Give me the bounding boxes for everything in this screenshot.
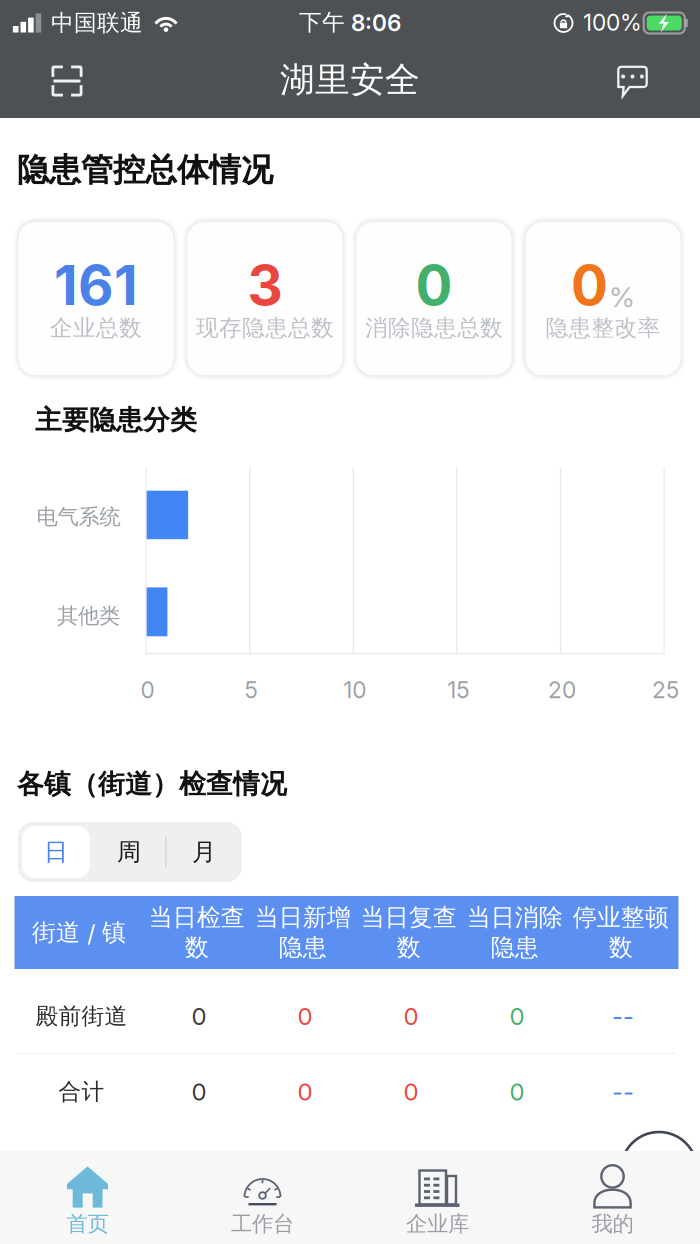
staticText: 0 — [403, 1002, 418, 1031]
staticText: 各镇（街道）检查情况 — [17, 767, 287, 801]
button[interactable]: 我的 — [525, 1151, 700, 1244]
staticText: 0 — [571, 252, 608, 318]
button[interactable]: 0 — [356, 222, 511, 375]
button[interactable]: 扫一扫 — [27, 44, 107, 118]
staticText: 0 — [415, 252, 452, 318]
staticText: 下午 8:06 — [299, 8, 401, 37]
staticText: 主要隐患分类 — [35, 403, 197, 437]
staticText: 0 — [509, 1002, 524, 1031]
staticText: 殿前街道 — [35, 1002, 127, 1031]
staticText: 街道 / 镇 — [32, 917, 126, 948]
staticText: 当日新增 隐患 — [254, 902, 350, 963]
button[interactable]: 首页 — [0, 1151, 175, 1244]
staticText: 工作台 — [231, 1210, 294, 1237]
staticText: 电气系统 — [36, 504, 120, 530]
staticText: 首页 — [66, 1210, 108, 1237]
staticText: 5 — [245, 676, 258, 704]
staticText: 3 — [247, 252, 282, 318]
staticText: 0 — [297, 1077, 312, 1106]
button[interactable]: 月 — [170, 826, 238, 878]
staticText: 隐患管控总体情况 — [17, 150, 273, 190]
button[interactable]: 0 — [525, 222, 680, 375]
staticText: 25 — [652, 676, 679, 704]
staticText: 其他类 — [57, 603, 120, 629]
button[interactable]: 日 — [22, 826, 90, 878]
button[interactable]: 工作台 — [175, 1151, 350, 1244]
button[interactable]: 3 — [187, 222, 342, 375]
staticText: 隐患整改率 — [545, 314, 660, 342]
staticText: 0 — [140, 676, 154, 704]
staticText: 企业总数 — [50, 314, 142, 342]
staticText: 日 — [44, 837, 68, 867]
staticText: 15 — [447, 676, 469, 704]
staticText: 当日检查 数 — [148, 902, 244, 963]
staticText: 当日消除 隐患 — [466, 902, 562, 963]
staticText: 161 — [54, 252, 138, 318]
staticText: 当日复查 数 — [360, 902, 456, 963]
staticText: 0 — [297, 1002, 312, 1031]
staticText: 月 — [192, 837, 216, 867]
staticText: 0 — [403, 1077, 418, 1106]
button[interactable]: 殿前街道 — [17, 986, 676, 1046]
button[interactable]: 消息 — [592, 44, 672, 118]
staticText: % — [609, 280, 635, 314]
staticText: -- — [612, 1002, 634, 1031]
staticText: 企业库 — [406, 1210, 469, 1237]
staticText: 我的 — [591, 1210, 633, 1237]
staticText: 现存隐患总数 — [196, 314, 334, 342]
staticText: 消除隐患总数 — [365, 314, 503, 342]
staticText: 周 — [117, 837, 141, 867]
staticText: 20 — [548, 676, 576, 704]
button[interactable]: 161 — [18, 222, 173, 375]
staticText: 0 — [191, 1077, 206, 1106]
button[interactable]: 企业库 — [350, 1151, 525, 1244]
staticText: 中国联通 — [51, 9, 143, 37]
staticText: 10 — [343, 676, 366, 704]
staticText: 合计 — [58, 1077, 104, 1106]
staticText: 湖里安全 — [280, 58, 420, 102]
staticText: 100% — [583, 9, 642, 36]
staticText: 0 — [509, 1077, 524, 1106]
staticText: 0 — [191, 1002, 206, 1031]
staticText: -- — [612, 1077, 634, 1106]
staticText: 停业整顿 数 — [572, 902, 668, 963]
button[interactable]: 合计 — [17, 1062, 676, 1122]
button[interactable]: 周 — [95, 826, 163, 878]
